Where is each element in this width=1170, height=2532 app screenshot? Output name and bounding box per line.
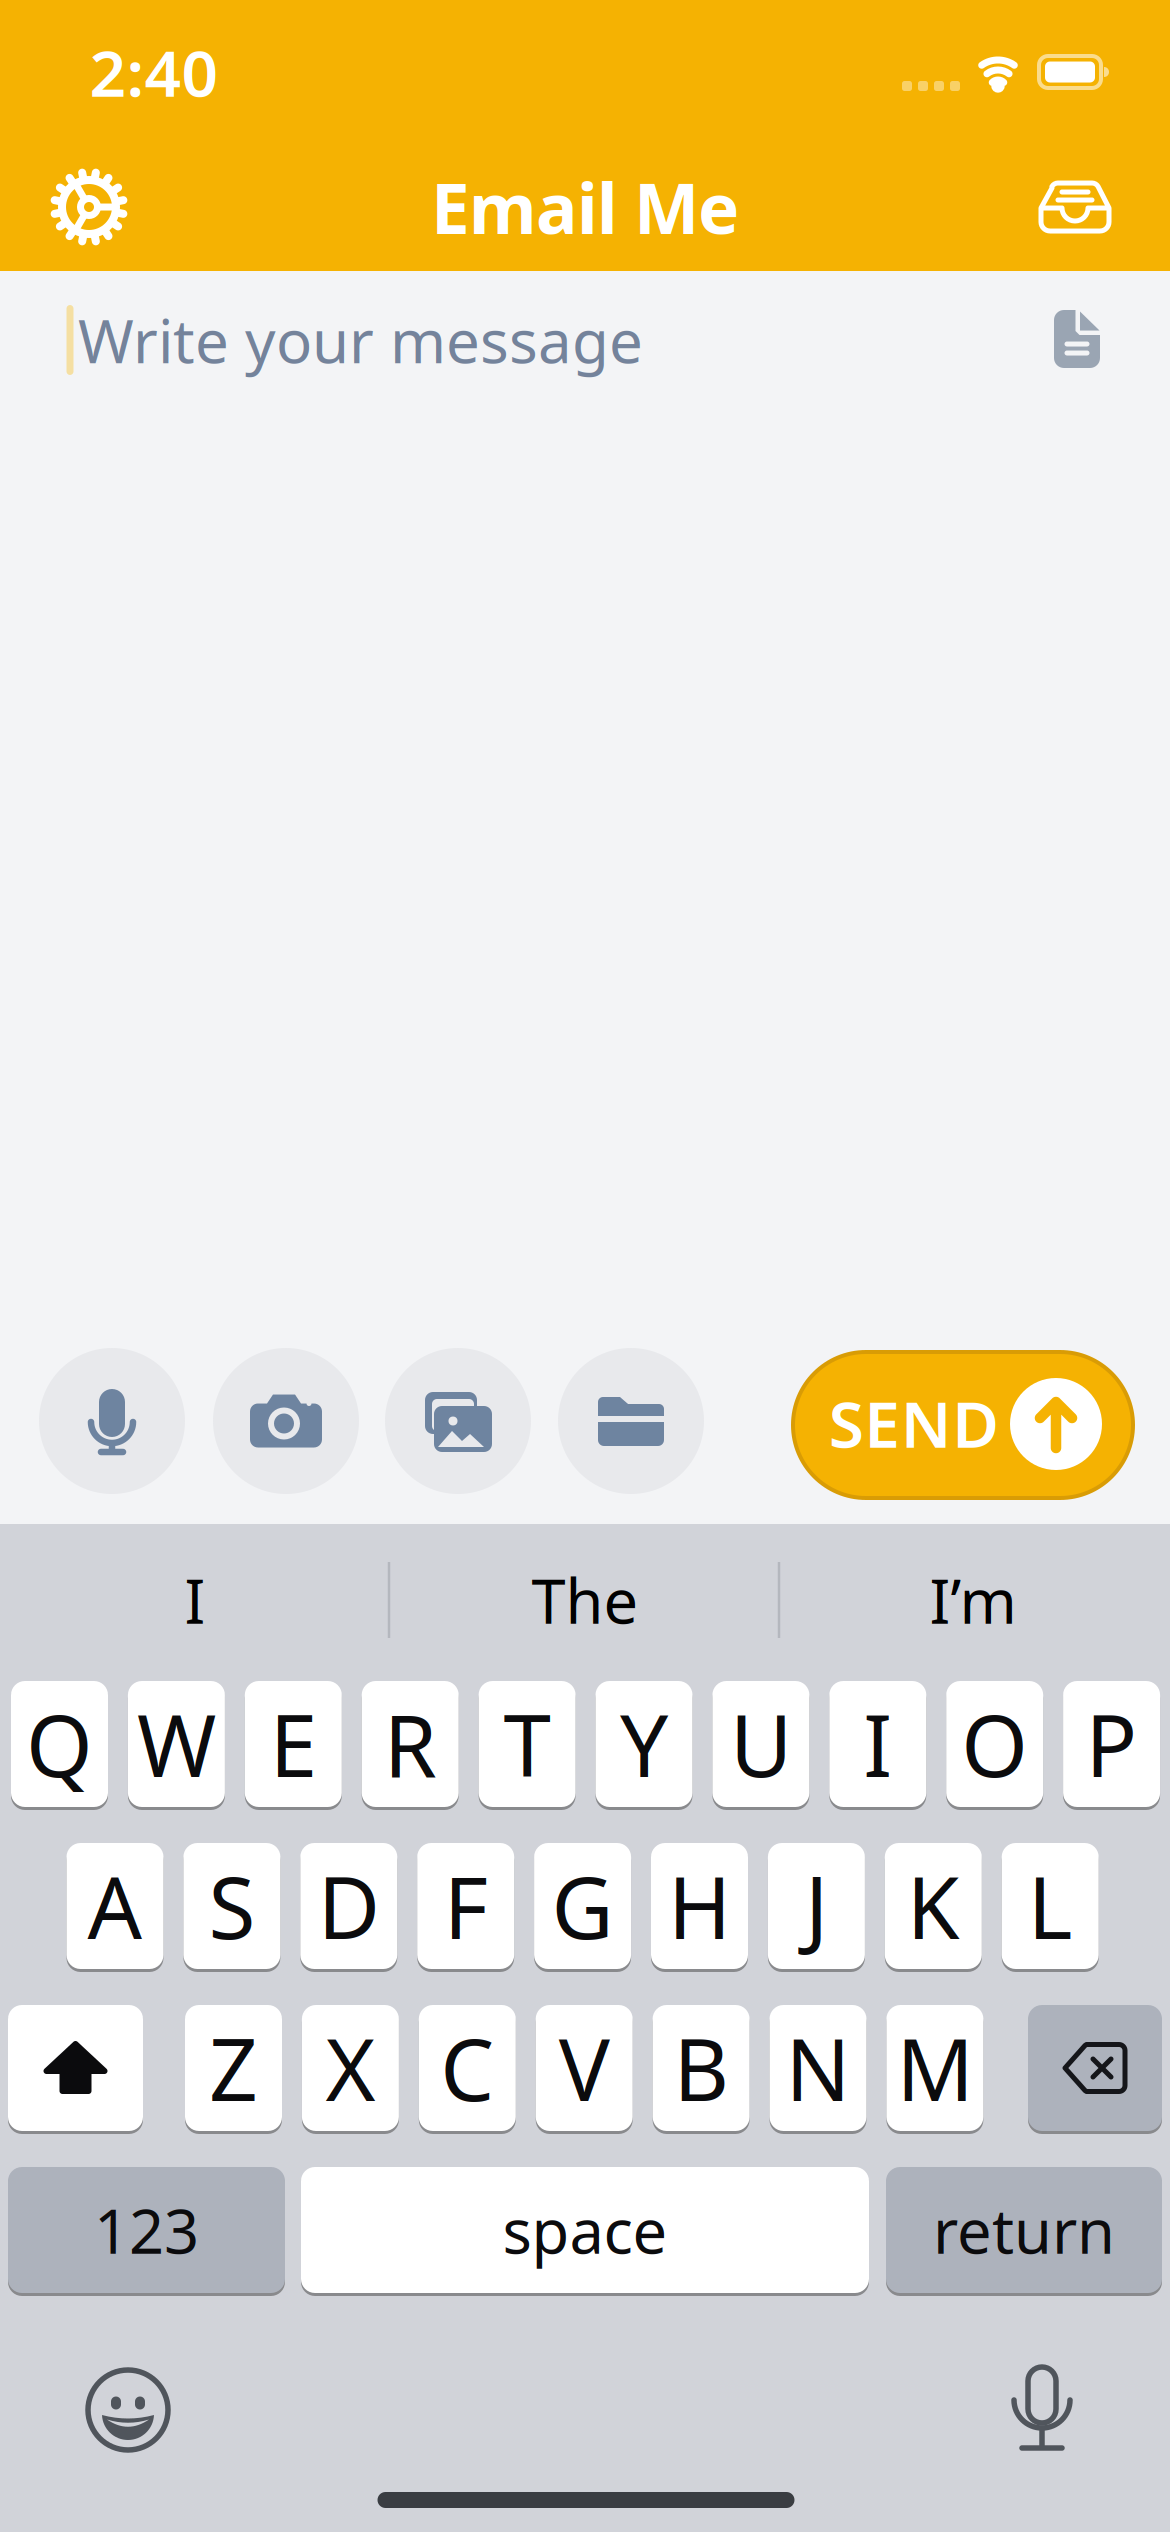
button[interactable]: Q	[11, 1679, 108, 1808]
staticText: O	[961, 1687, 1028, 1801]
button[interactable]: O	[946, 1679, 1043, 1808]
button[interactable]: I’m	[788, 1545, 1158, 1655]
staticText: I	[184, 1559, 205, 1641]
staticText: C	[440, 2011, 494, 2125]
staticText: Y	[620, 1687, 668, 1801]
staticText: M	[896, 2011, 973, 2125]
staticText: K	[907, 1849, 960, 1963]
button[interactable]: H	[651, 1841, 748, 1970]
staticText: B	[674, 2011, 729, 2125]
button[interactable]: E	[245, 1679, 342, 1808]
button[interactable]: Delete	[1028, 2003, 1162, 2132]
staticText: T	[504, 1687, 551, 1801]
button[interactable]: return	[886, 2165, 1162, 2294]
staticText: H	[668, 1849, 731, 1963]
button[interactable]: Record audio	[39, 1348, 185, 1494]
staticText: J	[805, 1849, 828, 1963]
button[interactable]: L	[1002, 1841, 1099, 1970]
button[interactable]: Shift	[8, 2003, 143, 2132]
staticText: F	[444, 1849, 488, 1963]
button[interactable]: A	[66, 1841, 163, 1970]
staticText: X	[325, 2011, 375, 2125]
button[interactable]: N	[769, 2003, 866, 2132]
button[interactable]: F	[417, 1841, 514, 1970]
staticText: D	[318, 1849, 380, 1963]
button[interactable]: V	[536, 2003, 633, 2132]
button[interactable]: K	[885, 1841, 982, 1970]
staticText: E	[270, 1687, 317, 1801]
staticText: G	[552, 1849, 614, 1963]
button[interactable]: Dictation	[1014, 2367, 1070, 2451]
button[interactable]: U	[712, 1679, 809, 1808]
staticText: 2:40	[89, 29, 218, 114]
button[interactable]: B	[653, 2003, 750, 2132]
button[interactable]: W	[128, 1679, 225, 1808]
button[interactable]: The	[400, 1545, 770, 1655]
staticText: Q	[26, 1687, 93, 1801]
staticText: P	[1086, 1687, 1138, 1801]
button[interactable]: G	[534, 1841, 631, 1970]
button[interactable]: I	[10, 1545, 380, 1655]
button[interactable]: Files	[558, 1348, 704, 1494]
button[interactable]: C	[419, 2003, 516, 2132]
staticText: Write your message	[78, 300, 643, 380]
staticText: U	[730, 1687, 792, 1801]
staticText: R	[384, 1687, 437, 1801]
staticText: I	[863, 1687, 892, 1801]
button[interactable]: S	[183, 1841, 280, 1970]
staticText: V	[559, 2011, 610, 2125]
button[interactable]: P	[1063, 1679, 1160, 1808]
staticText: L	[1028, 1849, 1073, 1963]
staticText: A	[87, 1849, 142, 1963]
staticText: SEND	[829, 1380, 999, 1465]
button[interactable]: T	[479, 1679, 576, 1808]
staticText: W	[137, 1687, 216, 1801]
button[interactable]: Y	[595, 1679, 692, 1808]
button[interactable]: Z	[185, 2003, 282, 2132]
button[interactable]: I	[829, 1679, 926, 1808]
staticText: The	[531, 1559, 638, 1641]
button[interactable]: D	[300, 1841, 397, 1970]
button[interactable]: SEND	[793, 1352, 1133, 1498]
button[interactable]: J	[768, 1841, 865, 1970]
button[interactable]: Emoji	[88, 2370, 168, 2450]
button[interactable]: X	[302, 2003, 399, 2132]
button[interactable]: M	[886, 2003, 983, 2132]
button[interactable]: 123	[8, 2165, 285, 2294]
button[interactable]: Photos	[385, 1348, 531, 1494]
button[interactable]: Settings	[44, 162, 134, 252]
staticText: Z	[209, 2011, 258, 2125]
button[interactable]: Templates	[1054, 310, 1100, 368]
staticText: space	[502, 2189, 667, 2271]
staticText: return	[933, 2189, 1115, 2271]
button[interactable]: Inbox	[1030, 162, 1120, 252]
staticText: Email Me	[431, 161, 739, 253]
staticText: I’m	[929, 1559, 1016, 1641]
button[interactable]: space	[301, 2165, 869, 2294]
button[interactable]: R	[362, 1679, 459, 1808]
button[interactable]: Camera	[213, 1348, 359, 1494]
staticText: 123	[94, 2189, 199, 2271]
staticText: N	[785, 2011, 850, 2125]
staticText: S	[208, 1849, 255, 1963]
